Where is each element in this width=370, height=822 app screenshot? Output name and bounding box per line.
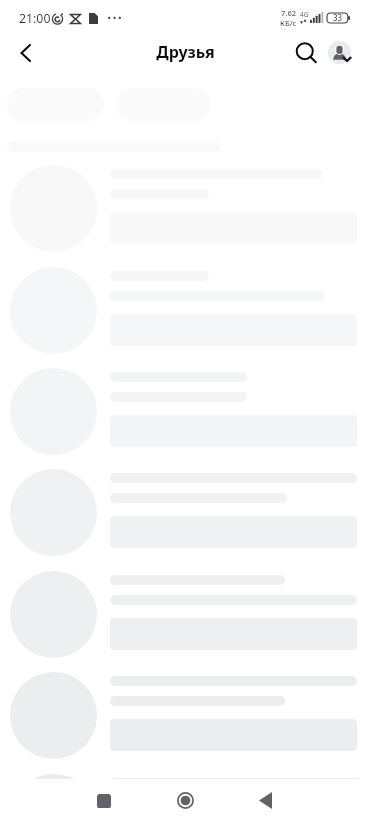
staticText: 7.62 bbox=[281, 8, 297, 18]
button[interactable]: Back navigation bbox=[242, 779, 288, 822]
button[interactable] bbox=[0, 469, 370, 556]
button[interactable]: Search bbox=[291, 38, 319, 66]
staticText: 33 bbox=[333, 12, 343, 23]
button[interactable] bbox=[0, 672, 370, 759]
staticText: 21:00 bbox=[19, 10, 51, 27]
button[interactable]: Back bbox=[11, 38, 41, 68]
button[interactable] bbox=[0, 267, 370, 354]
button[interactable] bbox=[0, 165, 370, 252]
staticText: Друзья bbox=[156, 41, 215, 63]
staticText: 4G bbox=[300, 10, 309, 19]
button[interactable]: Account bbox=[328, 41, 351, 64]
button[interactable] bbox=[0, 774, 370, 822]
button[interactable] bbox=[0, 368, 370, 455]
button[interactable] bbox=[0, 571, 370, 658]
staticText: КБ/с bbox=[280, 18, 297, 28]
button[interactable]: Recents bbox=[82, 779, 128, 822]
button[interactable]: Home bbox=[162, 779, 208, 822]
